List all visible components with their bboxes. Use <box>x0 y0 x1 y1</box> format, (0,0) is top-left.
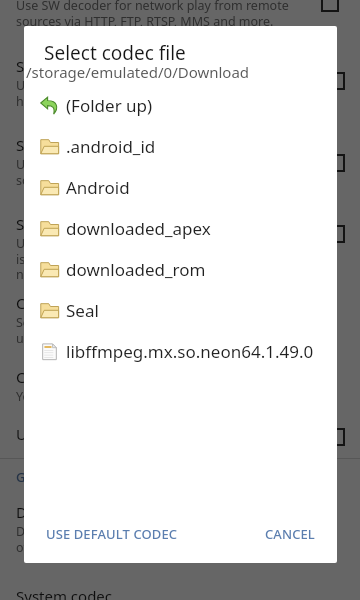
button[interactable]: System codec <box>0 584 360 600</box>
staticText: CANCEL <box>265 525 315 543</box>
staticText: /storage/emulated/0/Download <box>26 62 250 82</box>
staticText: Use SW decoder for local playback if HW … <box>16 235 314 282</box>
staticText: Check codec <box>16 367 104 387</box>
staticText: Use SW decoder for network play from rem… <box>16 156 289 188</box>
button[interactable]: SW video decoder <box>0 212 360 281</box>
staticText: Select codec file which will be used by … <box>16 314 188 346</box>
button[interactable]: Check codec <box>0 365 360 404</box>
button[interactable]: .android_id <box>24 126 337 167</box>
staticText: System codec <box>16 586 113 600</box>
button[interactable]: Seal <box>24 290 337 331</box>
staticText: downloaded_apex <box>66 217 211 240</box>
staticText: .android_id <box>66 135 156 158</box>
staticText: Use custom codec <box>16 424 144 444</box>
button[interactable]: Android <box>24 167 337 208</box>
staticText: SW video decoder <box>16 214 143 234</box>
staticText: Use SW decoder for local playback. Try t… <box>16 77 302 109</box>
button[interactable]: SW audio decoder for network stream <box>0 133 360 187</box>
staticText: Use SW decoder for network play from rem… <box>16 0 289 29</box>
staticText: USE DEFAULT CODEC <box>46 525 178 543</box>
staticText: Decoder options for various other settin… <box>16 523 180 555</box>
staticText: (Folder up) <box>66 94 153 117</box>
button[interactable]: libffmpeg.mx.so.neon64.1.49.0 <box>24 331 337 372</box>
staticText: SW audio decoder for network stream <box>16 135 284 155</box>
button[interactable]: USE DEFAULT CODEC <box>30 516 194 552</box>
staticText: Select codec file <box>44 40 186 66</box>
button[interactable]: SW audio decoder <box>0 54 360 108</box>
button[interactable]: Custom codec <box>0 291 360 345</box>
staticText: Seal <box>66 299 99 322</box>
staticText: Android <box>66 176 130 199</box>
staticText: libffmpeg.mx.so.neon64.1.49.0 <box>66 340 314 363</box>
button[interactable]: downloaded_apex <box>24 208 337 249</box>
button[interactable]: Decoder <box>0 500 360 554</box>
staticText: Decoder <box>16 502 76 522</box>
button[interactable]: Use custom codec <box>0 422 360 444</box>
button[interactable]: downloaded_rom <box>24 249 337 290</box>
button[interactable]: CANCEL <box>249 516 331 552</box>
staticText: General <box>16 468 65 486</box>
staticText: Custom codec <box>16 293 116 313</box>
staticText: Your device seems compatible. <box>16 388 197 405</box>
button[interactable]: (Folder up) <box>24 85 337 126</box>
staticText: SW audio decoder <box>16 56 144 76</box>
staticText: downloaded_rom <box>66 258 206 281</box>
